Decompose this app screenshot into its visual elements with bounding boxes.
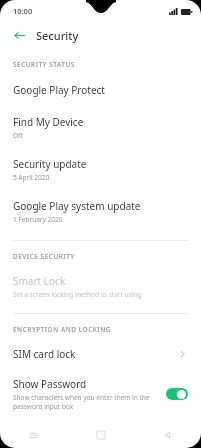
button[interactable]: Find My Device [0,108,201,144]
staticText: DEVICE SECURITY [13,252,75,261]
staticText: Find My Device [13,115,84,129]
staticText: 1 February 2020 [13,215,63,224]
button[interactable]: Recents [0,422,67,448]
staticText: Off [13,131,23,140]
button[interactable]: Google Play Protect [0,76,201,101]
staticText: Set a screen locking method to start usi… [13,290,142,299]
button[interactable]: Back [134,422,201,448]
button[interactable]: Security update [0,150,201,186]
staticText: Google Play Protect [13,83,105,97]
staticText: Show characters when you enter them in t… [13,393,160,411]
staticText: Show Password [13,377,87,391]
button[interactable]: Home [67,422,134,448]
other: Show Password toggle [166,388,188,400]
staticText: Security update [13,157,87,171]
staticText: 10:00 [13,6,33,16]
button[interactable]: Show Password [0,373,201,415]
button[interactable]: Back [10,26,28,44]
staticText: ENCRYPTION AND LOCKING [13,325,111,334]
staticText: 5 April 2020 [13,173,50,182]
button: Smart Lock [0,267,201,303]
staticText: Google Play system update [13,199,141,213]
staticText: Security [36,28,79,43]
button[interactable]: Google Play system update [0,192,201,228]
button[interactable]: SIM card lock [0,340,201,365]
staticText: Smart Lock [13,274,66,288]
staticText: SECURITY STATUS [13,60,75,69]
staticText: SIM card lock [13,347,76,361]
